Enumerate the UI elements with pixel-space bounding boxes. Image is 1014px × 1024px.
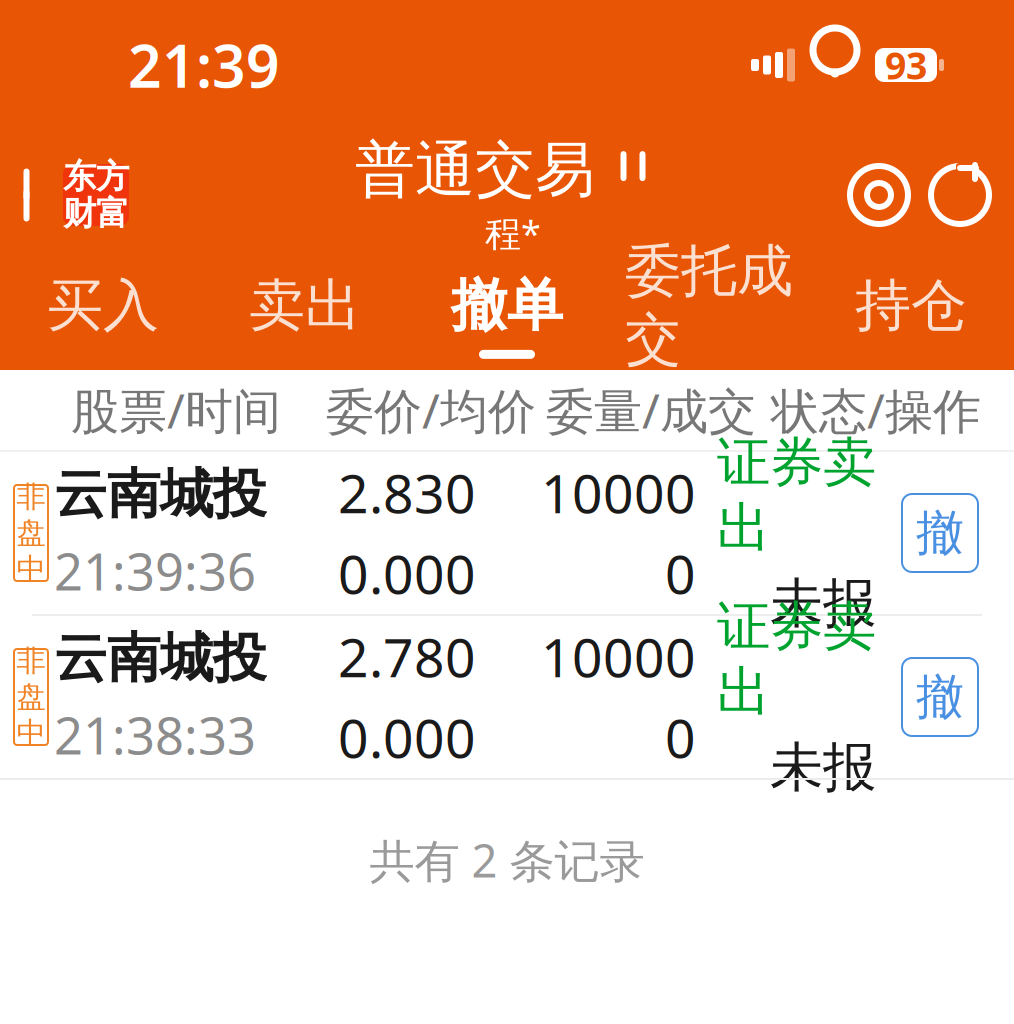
staticText: 中: [16, 715, 45, 751]
staticText: 10000: [541, 621, 696, 692]
button[interactable]: 撤: [902, 494, 978, 572]
staticText: 盘: [16, 679, 45, 715]
staticText: 93: [885, 40, 927, 90]
staticText: 持仓: [855, 271, 967, 340]
button[interactable]: 卖出: [204, 260, 406, 370]
staticText: 云南城投: [54, 462, 266, 527]
button[interactable]: 买入: [2, 260, 204, 370]
staticText: 非: [16, 479, 45, 515]
staticText: 撤单: [451, 271, 563, 340]
button[interactable]: Refresh: [917, 130, 1003, 260]
button[interactable]: 撤: [902, 658, 978, 736]
staticText: 0.000: [338, 538, 476, 609]
staticText: 21:39: [128, 26, 280, 104]
staticText: 卖出: [249, 271, 361, 340]
button[interactable]: Settings: [841, 130, 917, 260]
staticText: 委价/均价: [326, 378, 536, 442]
staticText: 0.000: [338, 702, 476, 773]
staticText: 共有 2 条记录: [369, 830, 644, 890]
staticText: 普通交易: [355, 133, 595, 207]
button[interactable]: 委托成交: [608, 260, 810, 370]
staticText: 状态/操作: [771, 378, 981, 442]
staticText: 财富: [63, 193, 129, 234]
staticText: 东方: [63, 156, 129, 197]
staticText: 0: [665, 538, 696, 609]
staticText: 非: [16, 643, 45, 679]
staticText: 未报: [770, 571, 876, 636]
staticText: 委托成交: [625, 237, 793, 374]
staticText: 委量/成交: [546, 378, 756, 442]
staticText: 程*: [485, 209, 541, 257]
staticText: 证券卖出: [717, 594, 876, 725]
staticText: 中: [16, 551, 45, 587]
staticText: 21:38:33: [54, 701, 256, 768]
staticText: 撤: [916, 667, 964, 726]
staticText: 2.830: [338, 457, 476, 528]
staticText: 盘: [16, 515, 45, 551]
staticText: 0: [665, 702, 696, 773]
staticText: 撤: [916, 503, 964, 562]
button[interactable]: Back: [0, 130, 129, 260]
staticText: 2.780: [338, 621, 476, 692]
staticText: 买入: [47, 271, 159, 340]
button[interactable]: 持仓: [810, 260, 1012, 370]
staticText: 云南城投: [54, 626, 266, 691]
staticText: 10000: [541, 457, 696, 528]
staticText: 未报: [770, 735, 876, 800]
button[interactable]: 撤单: [406, 260, 608, 370]
staticText: 证券卖出: [717, 430, 876, 561]
staticText: 股票/时间: [71, 378, 281, 442]
button[interactable]: 普通交易: [355, 133, 659, 207]
staticText: 21:39:36: [54, 537, 256, 604]
